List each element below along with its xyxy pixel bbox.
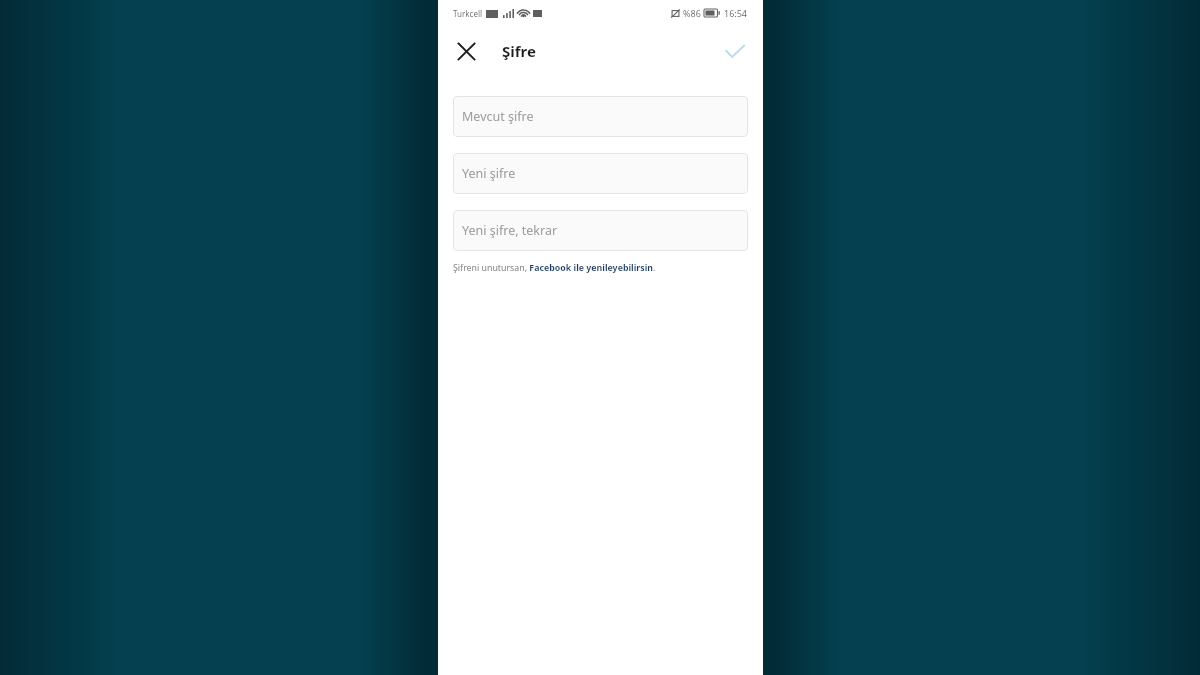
button[interactable]: Onayla bbox=[718, 34, 752, 68]
staticText: Mevcut şifre bbox=[462, 108, 534, 125]
button[interactable]: Mevcut şifre bbox=[453, 96, 748, 137]
staticText: Şifre bbox=[502, 41, 536, 61]
staticText: %86 bbox=[683, 7, 701, 19]
button[interactable]: Yeni şifre bbox=[453, 153, 748, 194]
staticText: Turkcell bbox=[453, 8, 483, 19]
staticText: Yeni şifre, tekrar bbox=[462, 222, 558, 239]
button[interactable]: Şifreni unutursan, Facebook ile yenileye… bbox=[453, 262, 656, 274]
button[interactable]: Kapat bbox=[449, 34, 483, 68]
staticText: 16:54 bbox=[724, 7, 748, 19]
staticText: Yeni şifre bbox=[462, 165, 516, 182]
button[interactable]: Yeni şifre, tekrar bbox=[453, 210, 748, 251]
